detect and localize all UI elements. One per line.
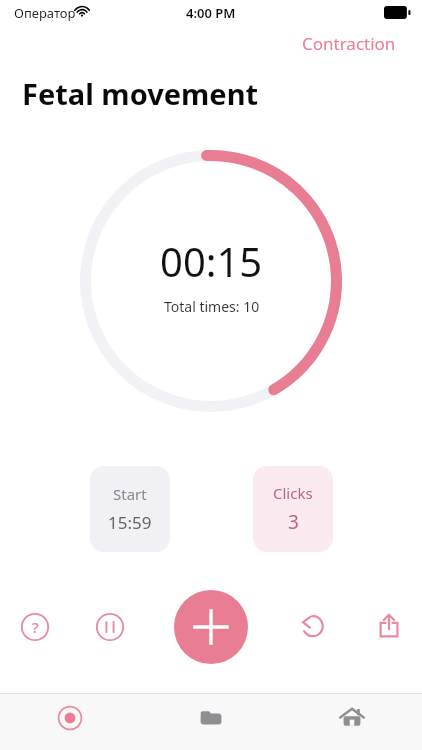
button[interactable]: Pause [90,607,130,647]
staticText: 15:59 [108,511,152,534]
staticText: Contraction [302,32,396,55]
staticText: Оператор [14,4,76,22]
staticText: Fetal movement [22,74,259,113]
staticText: ? [32,617,39,637]
button[interactable]: Folder [140,694,281,750]
button[interactable]: Contraction [296,30,402,57]
staticText: 00:15 [160,234,263,288]
button[interactable]: Clicks [253,466,333,552]
button[interactable]: Share [369,606,409,646]
staticText: 3 [288,509,299,535]
staticText: Total times: 10 [164,297,260,316]
staticText: Clicks [273,483,313,503]
staticText: Start [113,484,147,504]
button[interactable]: Record [0,694,140,750]
button[interactable]: Start [90,466,170,552]
button[interactable]: Add [174,590,248,664]
staticText: 4:00 PM [186,4,236,22]
button[interactable]: Home [281,694,422,750]
button[interactable]: Help [15,607,55,647]
button[interactable]: Undo [292,607,332,647]
